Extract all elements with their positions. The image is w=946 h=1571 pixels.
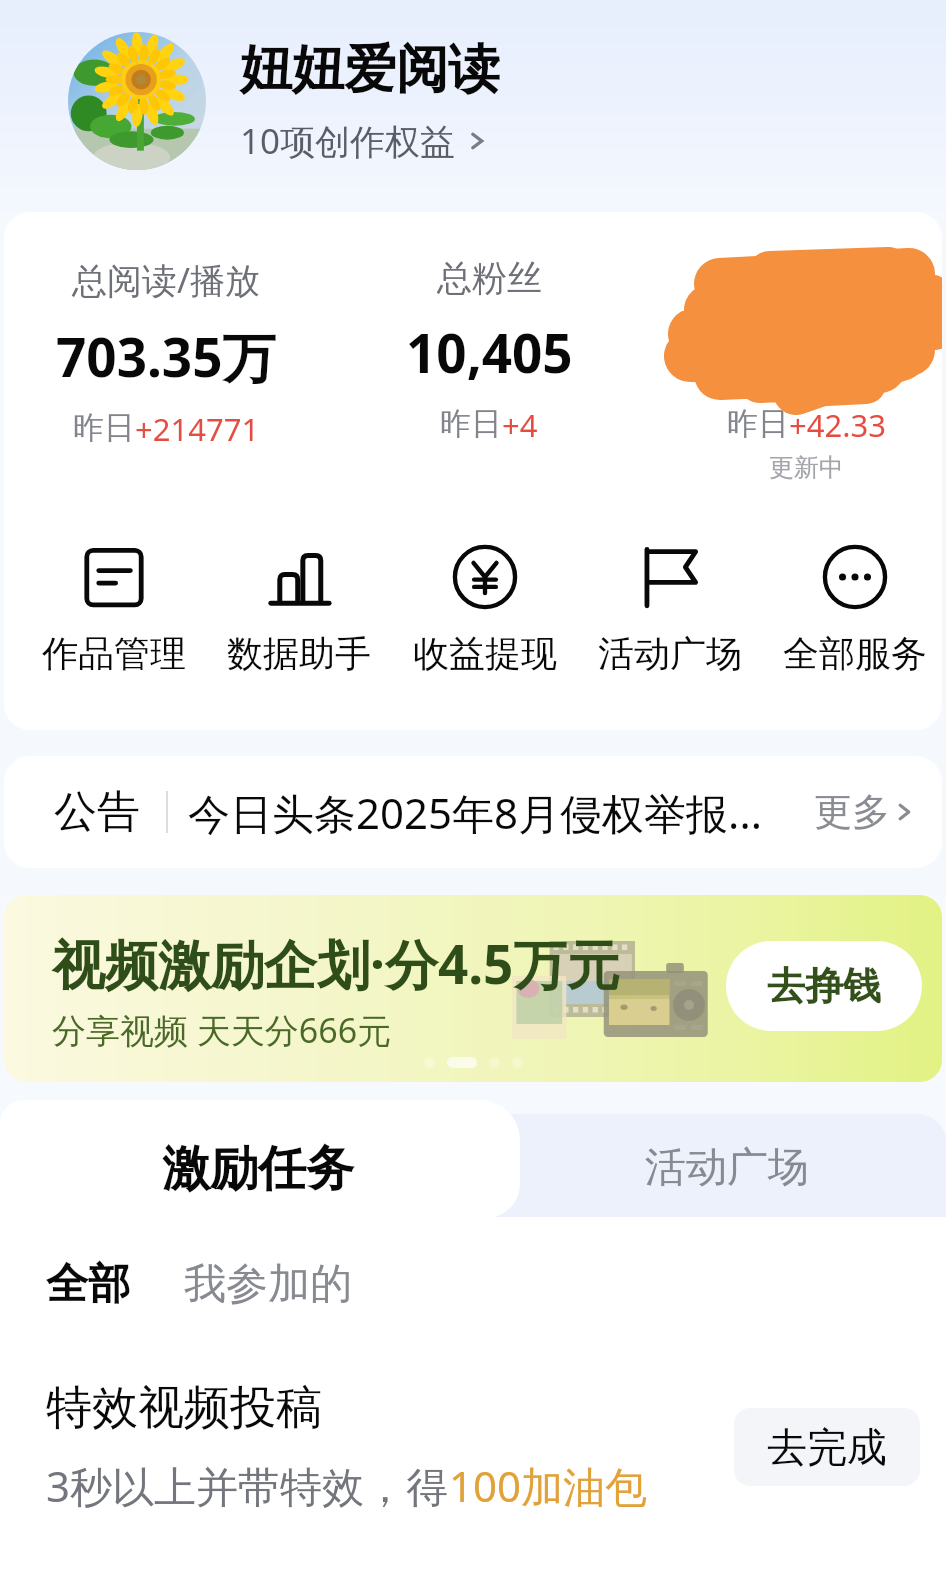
staticText: 活动广场 — [598, 631, 742, 676]
button[interactable]: 活动广场 — [520, 1114, 946, 1218]
staticText: 总阅读/播放 — [72, 256, 261, 304]
staticText: 激励任务 — [162, 1139, 354, 1199]
staticText: 更多 — [814, 788, 890, 836]
button[interactable]: Profile photo — [68, 32, 206, 170]
button[interactable]: 活动广场 — [598, 545, 742, 676]
staticText: +214771 — [135, 408, 260, 450]
staticText: 数据助手 — [227, 631, 371, 676]
staticText: 去挣钱 — [767, 962, 881, 1010]
button[interactable]: 更多 — [814, 788, 916, 836]
button[interactable]: 妞妞爱阅读 — [240, 37, 500, 103]
staticText: 昨日 — [440, 404, 502, 443]
button[interactable]: 总收入 — [646, 256, 942, 483]
staticText: 公告 — [54, 785, 140, 839]
staticText: 去完成 — [767, 1422, 887, 1472]
staticText: 10,405 — [406, 316, 573, 388]
staticText: 今日头条2025年8月侵权举报... — [188, 784, 788, 841]
staticText: 收益提现 — [413, 631, 557, 676]
staticText: 全部服务 — [783, 631, 927, 676]
staticText: 活动广场 — [645, 1142, 809, 1194]
button[interactable]: 收益提现 — [413, 545, 557, 676]
button[interactable]: 视频激励企划·分4.5万元 — [4, 895, 942, 1082]
button[interactable]: 数据助手 — [227, 545, 371, 676]
button[interactable]: 我参加的 — [174, 1246, 362, 1323]
button[interactable]: 公告 — [4, 756, 942, 868]
staticText: 总粉丝 — [437, 256, 542, 300]
button[interactable]: 作品管理 — [42, 545, 186, 676]
staticText: 昨日 — [73, 408, 135, 447]
staticText: +42.33 — [789, 404, 886, 446]
staticText: 3秒以上并带特效，得 — [46, 1457, 449, 1514]
staticText: 10项创作权益 — [240, 117, 456, 165]
staticText: 703.35万 — [56, 320, 276, 392]
staticText: 100加油包 — [449, 1457, 648, 1514]
button[interactable]: 全部 — [36, 1246, 140, 1323]
button[interactable]: 10项创作权益 — [240, 117, 490, 165]
staticText: 我参加的 — [184, 1258, 352, 1311]
staticText: 昨日 — [727, 404, 789, 443]
staticText: 全部 — [46, 1258, 130, 1311]
button[interactable]: 总粉丝 — [329, 256, 649, 446]
staticText: 更新中 — [769, 452, 844, 483]
button[interactable]: 去挣钱 — [726, 941, 922, 1031]
staticText: 视频激励企划·分4.5万元 — [52, 927, 620, 999]
button[interactable]: 总阅读/播放 — [6, 256, 326, 450]
staticText: 特效视频投稿 — [46, 1379, 322, 1437]
staticText: 分享视频 天天分666元 — [52, 1007, 392, 1053]
staticText: +4 — [502, 404, 538, 446]
staticText: 作品管理 — [42, 631, 186, 676]
button[interactable]: 全部服务 — [783, 545, 927, 676]
button[interactable]: 去完成 — [734, 1408, 920, 1486]
button[interactable]: 激励任务 — [0, 1100, 520, 1218]
